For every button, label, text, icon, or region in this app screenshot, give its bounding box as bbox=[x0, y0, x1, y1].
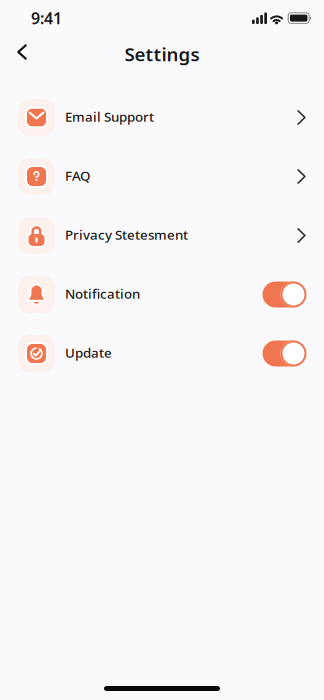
staticText: Privacy Stetesment bbox=[65, 226, 188, 243]
button[interactable]: Notification bbox=[262, 281, 306, 307]
button[interactable]: Privacy Stetesment bbox=[0, 206, 324, 265]
button[interactable]: Back bbox=[0, 37, 27, 69]
staticText: Settings bbox=[124, 42, 199, 66]
staticText: Notification bbox=[65, 285, 140, 302]
staticText: 9:41 bbox=[31, 7, 62, 29]
button[interactable]: Email Support bbox=[0, 88, 324, 147]
staticText: Update bbox=[65, 344, 112, 361]
staticText: FAQ bbox=[65, 167, 90, 184]
button[interactable]: Update bbox=[262, 340, 306, 366]
button[interactable]: FAQ bbox=[0, 147, 324, 206]
staticText: Email Support bbox=[65, 108, 154, 125]
